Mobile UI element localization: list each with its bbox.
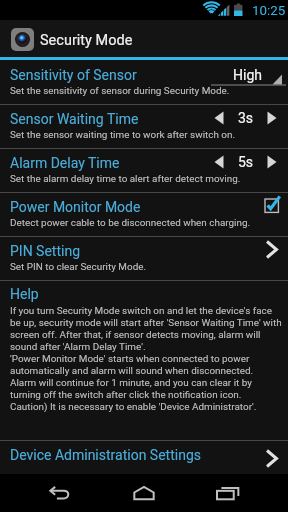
button[interactable]: Open bbox=[250, 446, 288, 472]
button[interactable]: High bbox=[211, 60, 286, 86]
staticText: Sensitivity of Sensor bbox=[10, 67, 137, 83]
button[interactable]: Home bbox=[120, 474, 168, 512]
staticText: If you turn Security Mode switch on and … bbox=[10, 305, 282, 413]
button[interactable]: Decrease bbox=[212, 149, 226, 175]
button[interactable]: Sensor Waiting Time bbox=[0, 105, 288, 148]
button[interactable]: PIN Setting bbox=[0, 237, 288, 280]
staticText: 10:25 bbox=[252, 3, 286, 19]
button[interactable]: Open bbox=[250, 237, 288, 263]
staticText: High bbox=[233, 67, 262, 83]
staticText: Power Monitor Mode bbox=[10, 199, 141, 215]
staticText: Detect power cable to be disconnected wh… bbox=[10, 217, 251, 229]
button[interactable]: Back bbox=[36, 474, 84, 512]
staticText: Device Administration Settings bbox=[10, 447, 201, 463]
button[interactable]: Decrease bbox=[212, 105, 226, 131]
button[interactable]: Power Monitor Mode bbox=[248, 193, 288, 219]
button[interactable]: Sensitivity of Sensor bbox=[0, 60, 288, 104]
staticText: Alarm Delay Time bbox=[10, 155, 120, 171]
staticText: PIN Setting bbox=[10, 243, 80, 259]
button[interactable]: Recent apps bbox=[204, 474, 252, 512]
staticText: Security Mode bbox=[40, 32, 133, 49]
staticText: 3s bbox=[238, 110, 254, 126]
staticText: Set the sensor waiting time to work afte… bbox=[10, 129, 236, 141]
button[interactable]: Alarm Delay Time bbox=[0, 149, 288, 192]
staticText: 5s bbox=[238, 154, 254, 170]
staticText: Help bbox=[10, 286, 39, 302]
staticText: Sensor Waiting Time bbox=[10, 111, 139, 127]
staticText: Set the alarm delay time to alert after … bbox=[10, 173, 241, 185]
button[interactable]: Increase bbox=[265, 105, 279, 131]
button[interactable]: Device Administration Settings bbox=[0, 441, 288, 474]
button[interactable]: Increase bbox=[265, 149, 279, 175]
button[interactable]: Power Monitor Mode bbox=[0, 193, 288, 236]
staticText: Set PIN to clear Security Mode. bbox=[10, 261, 147, 273]
staticText: Set the sensitivity of sensor during Sec… bbox=[10, 85, 230, 97]
button[interactable]: Security Mode bbox=[0, 20, 288, 57]
